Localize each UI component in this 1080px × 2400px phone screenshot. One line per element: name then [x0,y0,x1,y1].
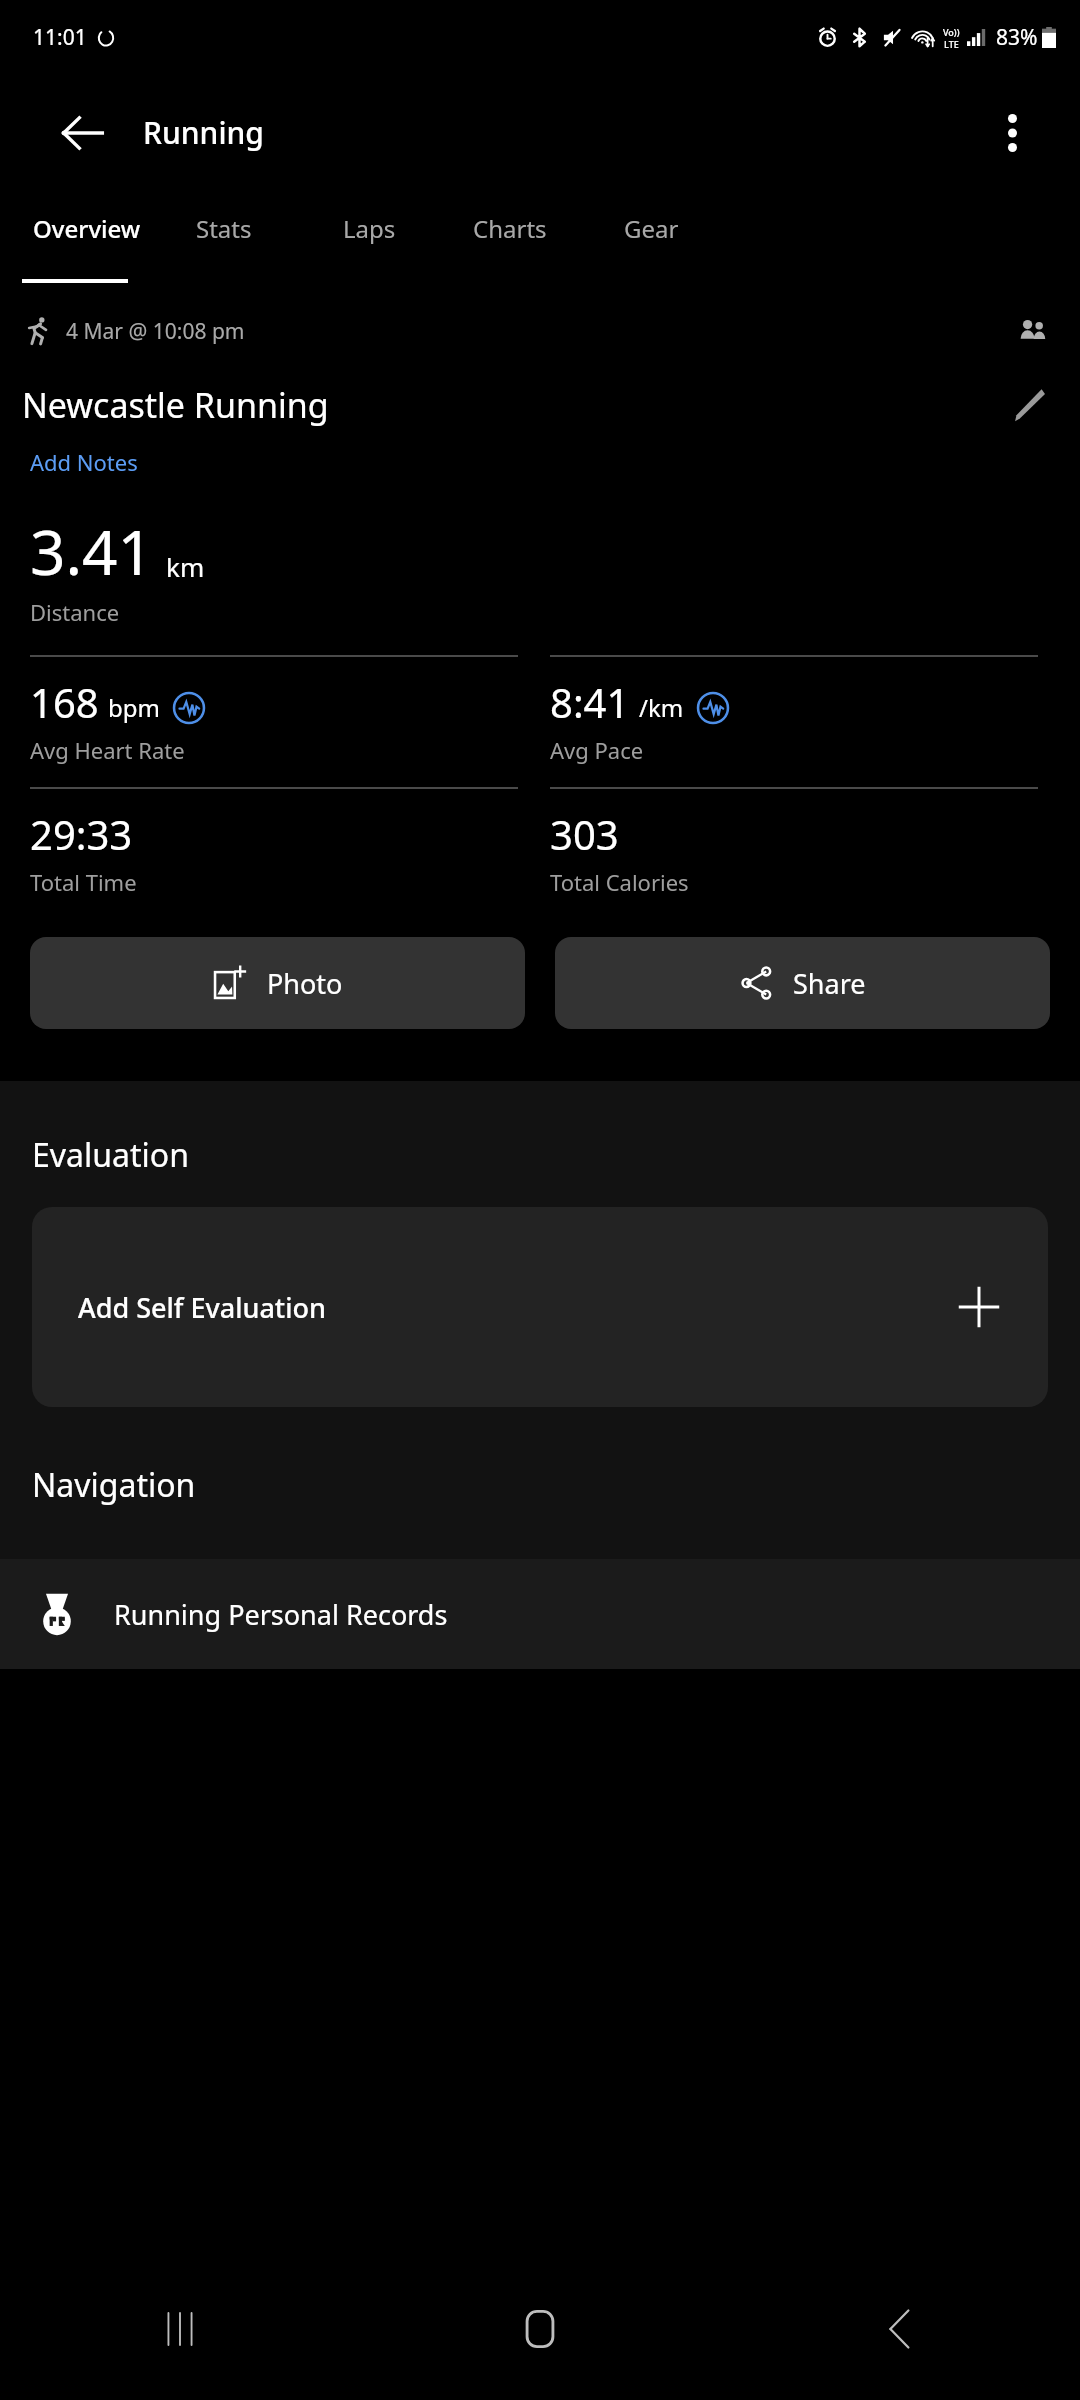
staticText: Total Calories [550,867,689,897]
staticText: Avg Pace [550,735,644,765]
staticText: 11:01 [33,23,87,52]
button[interactable]: Gear [624,190,679,283]
staticText: Total Time [30,867,137,897]
staticText: 83% [996,23,1038,52]
staticText: Running Personal Records [114,1596,448,1633]
staticText: Photo [267,965,343,1002]
staticText: Avg Heart Rate [30,735,185,765]
staticText: km [166,549,205,584]
staticText: Gear [624,212,679,245]
staticText: 168 [30,675,99,729]
staticText: Running [143,112,264,153]
button[interactable]: Edit [998,375,1058,435]
staticText: /km [639,691,684,724]
staticText: Charts [473,212,547,245]
button[interactable]: More options [964,85,1060,181]
button[interactable]: Add Self Evaluation [32,1207,1048,1407]
button[interactable]: Overview [33,190,141,283]
staticText: Overview [33,212,141,245]
button[interactable]: Photo [30,937,525,1029]
button[interactable]: Charts [473,190,547,283]
staticText: 303 [550,807,619,861]
staticText: 29:33 [30,807,133,861]
button[interactable]: Recents [0,2258,360,2400]
staticText: LTE [944,38,959,50]
staticText: Add Notes [30,447,138,477]
staticText: 4 Mar @ 10:08 pm [66,317,245,346]
staticText: Add Self Evaluation [78,1289,326,1326]
button[interactable]: 168 [30,655,518,765]
staticText: Evaluation [32,1133,189,1177]
staticText: Vo)) [943,26,960,38]
button[interactable]: 29:33 [30,787,518,897]
button[interactable]: Stats [196,190,252,283]
button[interactable]: Share [555,937,1050,1029]
staticText: bpm [108,691,160,724]
staticText: 3.41 [30,509,154,593]
button[interactable]: Back [720,2258,1080,2400]
button[interactable]: Laps [343,190,396,283]
staticText: Laps [343,212,396,245]
staticText: Distance [30,597,120,627]
staticText: Navigation [32,1463,196,1507]
staticText: Newcastle Running [22,382,329,428]
button[interactable]: Participants [1006,305,1058,357]
button[interactable]: 8:41 [550,655,1038,765]
button[interactable]: Add Notes [22,443,146,481]
button[interactable]: Home [360,2258,720,2400]
button[interactable]: Running Personal Records [0,1559,1080,1669]
staticText: 8:41 [550,675,630,729]
button[interactable]: Back [30,80,136,186]
staticText: Stats [196,212,252,245]
button[interactable]: 303 [550,787,1038,897]
staticText: Share [793,965,866,1002]
